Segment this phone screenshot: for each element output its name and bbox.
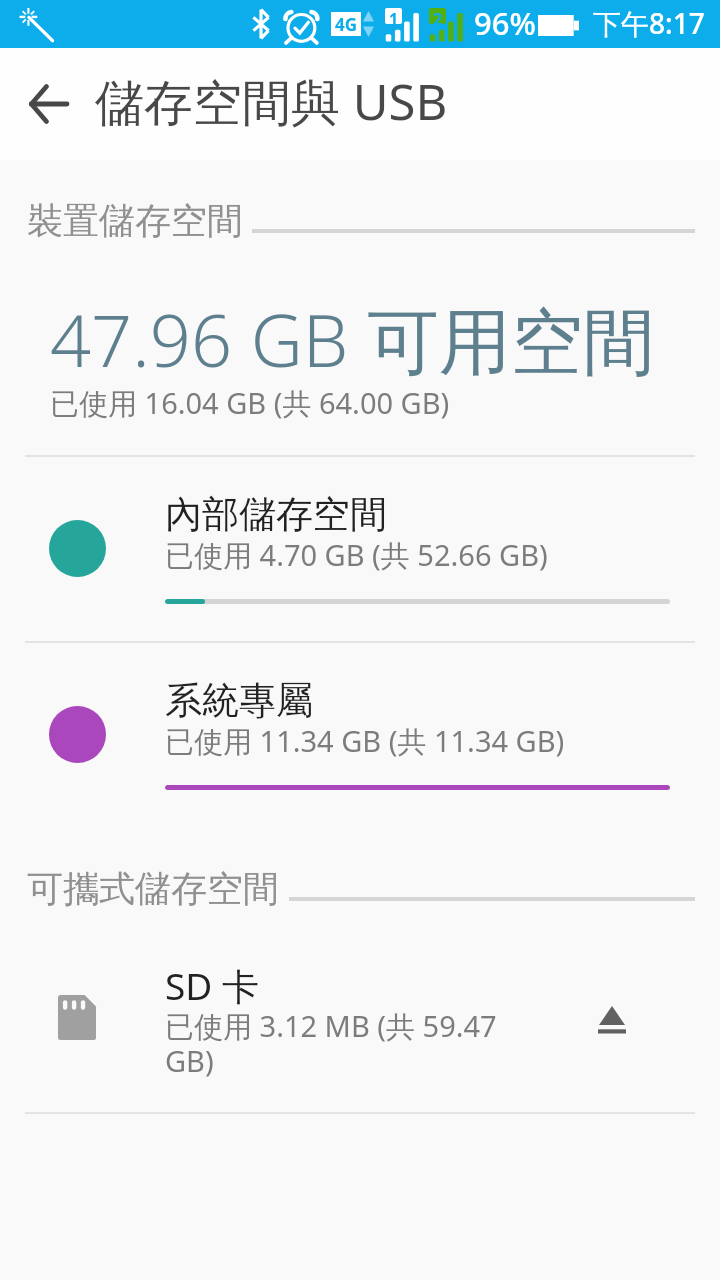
- staticText: GB): [165, 1041, 214, 1080]
- button[interactable]: SD 卡: [0, 920, 720, 1120]
- button[interactable]: Back: [10, 66, 86, 142]
- button[interactable]: 系統專屬: [0, 641, 720, 827]
- staticText: 2: [433, 8, 443, 24]
- staticText: 已使用 16.04 GB (共 64.00 GB): [50, 383, 450, 423]
- staticText: 下午8:17: [593, 4, 705, 42]
- staticText: 96%: [474, 2, 536, 44]
- staticText: SD 卡: [165, 960, 259, 1011]
- staticText: 47.96 GB 可用空間: [50, 290, 656, 388]
- staticText: 系統專屬: [165, 677, 313, 724]
- staticText: 1: [389, 8, 399, 24]
- button[interactable]: Eject: [556, 964, 668, 1076]
- staticText: 已使用 3.12 MB (共 59.47: [165, 1006, 497, 1046]
- button[interactable]: 內部儲存空間: [0, 455, 720, 641]
- staticText: 儲存空間與 USB: [95, 68, 448, 135]
- staticText: 內部儲存空間: [165, 491, 387, 538]
- staticText: 可攜式儲存空間: [27, 866, 279, 911]
- staticText: 已使用 4.70 GB (共 52.66 GB): [165, 535, 548, 575]
- staticText: 4G: [335, 13, 358, 36]
- staticText: 裝置儲存空間: [27, 198, 243, 243]
- staticText: 已使用 11.34 GB (共 11.34 GB): [165, 721, 565, 761]
